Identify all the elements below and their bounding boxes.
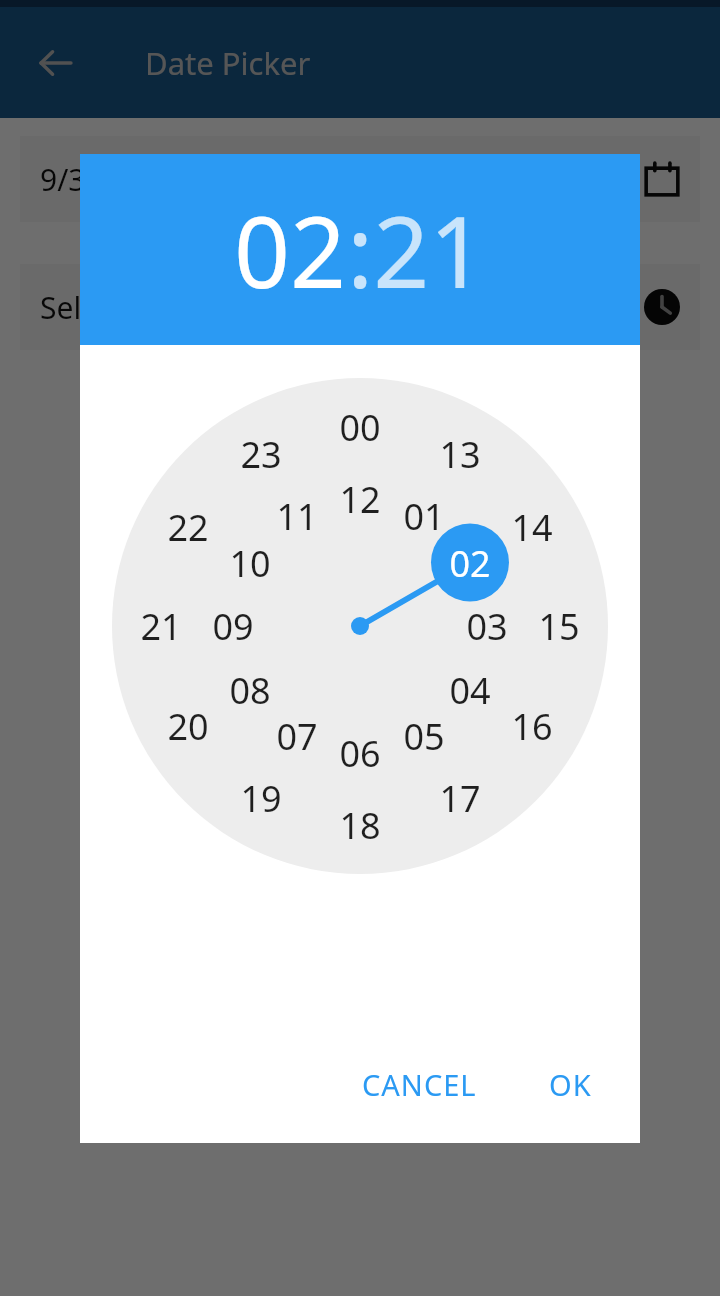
button[interactable]: Back — [26, 33, 86, 93]
button[interactable]: 02 — [80, 154, 640, 345]
button[interactable]: 18 — [339, 801, 381, 850]
staticText: :21 — [347, 183, 486, 316]
staticText: 02 — [234, 183, 347, 316]
button[interactable]: 17 — [439, 774, 481, 823]
staticText: Select Time — [40, 287, 644, 328]
button[interactable]: 23 — [240, 430, 282, 479]
button[interactable]: 08 — [229, 666, 271, 715]
button[interactable] — [0, 0, 720, 1296]
button[interactable]: 9/30/2024 — [20, 136, 700, 222]
staticText: Date Picker — [145, 42, 311, 84]
staticText: 9/30/2024 — [40, 159, 644, 200]
button[interactable]: 00 — [339, 403, 381, 452]
button[interactable]: 10 — [229, 539, 271, 588]
button[interactable]: 02 — [449, 539, 491, 588]
button[interactable]: 09 — [212, 602, 254, 651]
button[interactable]: 12 — [339, 475, 381, 524]
button[interactable]: 15 — [538, 602, 580, 651]
button[interactable]: CANCEL — [344, 1053, 495, 1116]
button[interactable]: 19 — [240, 774, 282, 823]
button[interactable]: 22 — [167, 503, 209, 552]
staticText: OK — [549, 1065, 592, 1104]
button[interactable]: 11 — [276, 492, 318, 541]
button[interactable]: 14 — [511, 503, 553, 552]
button[interactable]: Select Time — [20, 264, 700, 350]
button[interactable]: 21 — [140, 602, 182, 651]
button[interactable]: 04 — [449, 666, 491, 715]
staticText: CANCEL — [362, 1065, 477, 1104]
button[interactable]: 16 — [511, 702, 553, 751]
button[interactable]: 13 — [439, 430, 481, 479]
button[interactable]: 01 — [403, 492, 445, 541]
button[interactable]: 07 — [276, 712, 318, 761]
button[interactable]: 20 — [167, 702, 209, 751]
button[interactable]: 03 — [466, 602, 508, 651]
button[interactable]: 06 — [339, 729, 381, 778]
button[interactable]: 05 — [403, 712, 445, 761]
button[interactable]: OK — [531, 1053, 610, 1116]
